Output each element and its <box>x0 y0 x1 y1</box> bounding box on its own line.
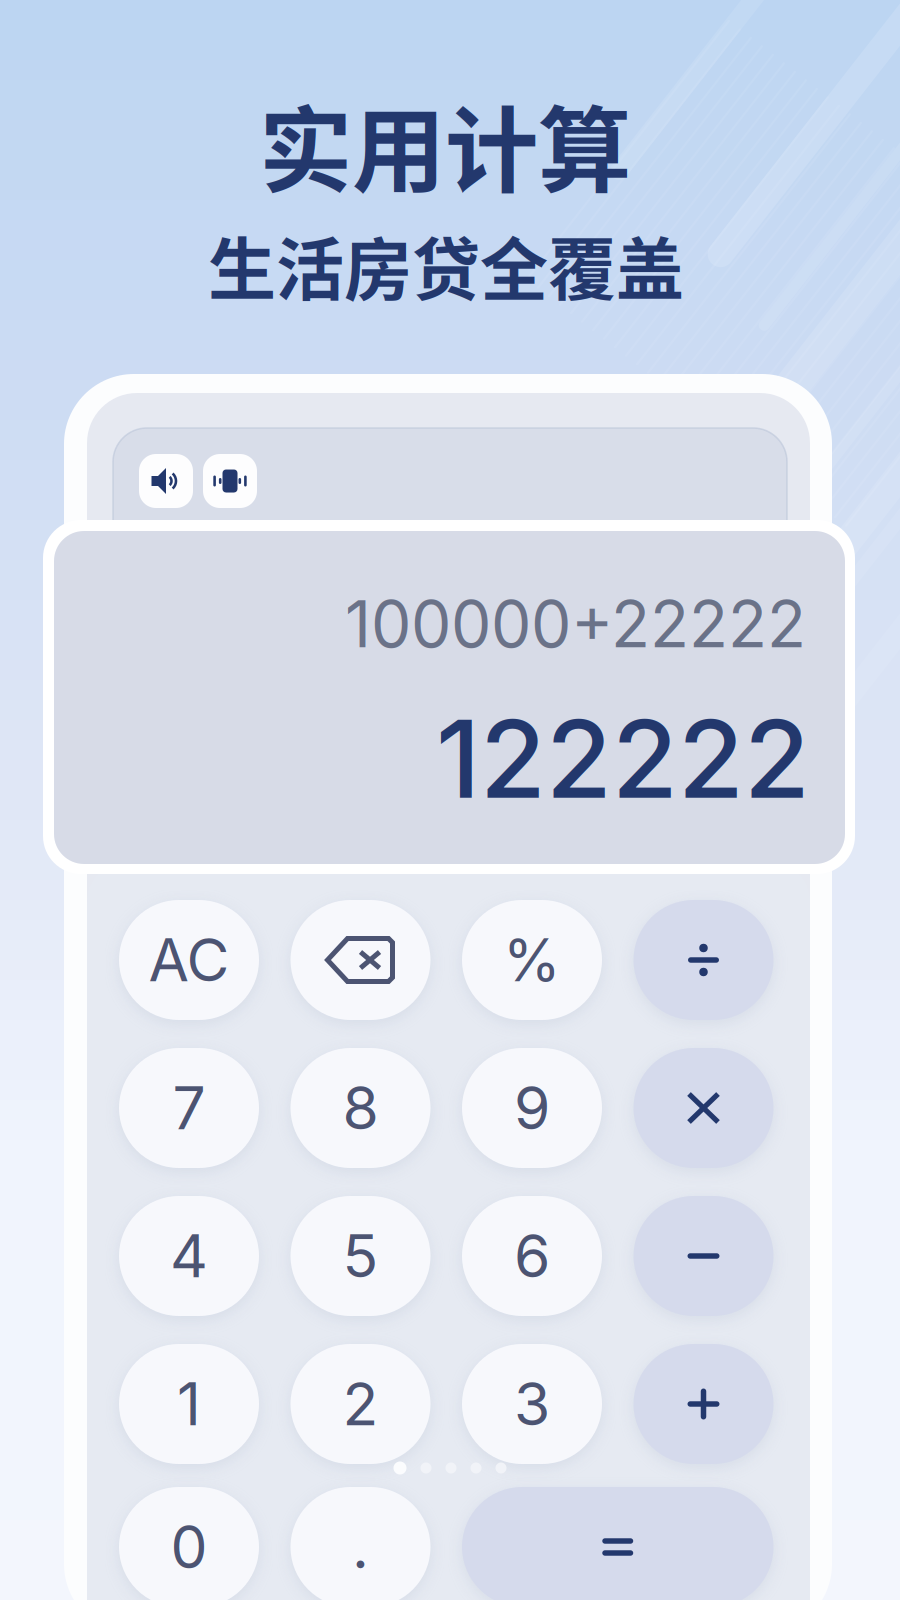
staticText: 0 <box>170 1511 207 1582</box>
button[interactable]: Divide <box>633 900 773 1020</box>
staticText: 100000+22222 <box>345 585 806 663</box>
button[interactable]: 2 <box>290 1344 430 1464</box>
staticText: % <box>503 924 561 995</box>
staticText: 5 <box>342 1220 378 1291</box>
button[interactable]: Percent <box>462 900 602 1020</box>
button[interactable] <box>203 454 257 508</box>
staticText: 7 <box>172 1072 205 1143</box>
button[interactable]: 4 <box>119 1196 259 1316</box>
button[interactable]: 0 <box>119 1487 259 1600</box>
button[interactable]: Subtract <box>633 1196 773 1316</box>
staticText: 4 <box>170 1220 208 1291</box>
button[interactable] <box>139 454 193 508</box>
staticText: 实用计算 <box>259 76 631 211</box>
staticText: 3 <box>514 1368 550 1439</box>
button[interactable]: Multiply <box>633 1048 773 1168</box>
button[interactable]: 5 <box>290 1196 430 1316</box>
button[interactable]: Clear <box>119 900 259 1020</box>
button[interactable]: 6 <box>462 1196 602 1316</box>
button[interactable]: 7 <box>119 1048 259 1168</box>
staticText: . <box>352 1511 369 1582</box>
staticText: 生活房贷全覆盖 <box>208 216 684 314</box>
staticText: 8 <box>342 1072 378 1143</box>
button[interactable]: 1 <box>119 1344 259 1464</box>
button[interactable]: . <box>290 1487 430 1600</box>
staticText: 122222 <box>436 694 810 824</box>
staticText: AC <box>148 924 229 995</box>
button[interactable]: Delete <box>290 900 430 1020</box>
button[interactable]: Equals <box>462 1487 773 1600</box>
staticText: 6 <box>514 1220 550 1291</box>
staticText: 2 <box>342 1368 378 1439</box>
button[interactable]: 3 <box>462 1344 602 1464</box>
button[interactable]: 8 <box>290 1048 430 1168</box>
button[interactable]: 9 <box>462 1048 602 1168</box>
staticText: 9 <box>514 1072 550 1143</box>
button[interactable]: Add <box>633 1344 773 1464</box>
staticText: 1 <box>177 1368 201 1439</box>
